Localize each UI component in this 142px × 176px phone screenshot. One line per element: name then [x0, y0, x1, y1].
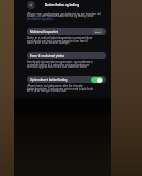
staticText: batterilevetiden. Funksjonen venter med …: [27, 87, 94, 91]
staticText: systemer bidrar til å motvirke ytelsespå…: [27, 63, 90, 67]
button[interactable]: Maksimal kapasitet: [27, 28, 106, 35]
button[interactable]: Om batteri og ytelse...: [27, 17, 55, 21]
staticText: iPhone lærer av ladevanene dine for å be…: [27, 84, 83, 88]
staticText: med da det var nytt. Lavere kapasitet ka…: [27, 39, 88, 43]
staticText: Batterihelsa og lading: [45, 3, 80, 7]
staticText: Maksimal kapasitet: [30, 30, 58, 34]
button[interactable]: Back: [27, 1, 35, 9]
button[interactable]: 88 %: [93, 29, 103, 34]
staticText: Dette er et mål på batterikapasiteten sa…: [27, 36, 93, 40]
staticText: som kan oppstå etter hvert som batteriet…: [27, 65, 88, 69]
staticText: færre timer bruk mellom ladinger.: [27, 41, 70, 45]
button[interactable]: Evne til maksimal ytelse: [27, 52, 106, 59]
staticText: Evne til maksimal ytelse: [30, 54, 65, 58]
staticText: iPhone viser opplysninger om batteriet o…: [27, 12, 102, 16]
staticText: 88 %: [95, 30, 101, 33]
button[interactable]: Optimalisert batterilading: [91, 77, 103, 83]
staticText: Optimalisert batterilading: [30, 78, 68, 82]
button[interactable]: Optimalisert batterilading: [27, 76, 106, 83]
staticText: Innebygde dynamiske programvare- og mask…: [27, 60, 94, 64]
staticText: brukes. Les om hvordan batterihelse og l…: [27, 14, 94, 18]
staticText: 80 % til du trenger å bruke den.: [27, 89, 67, 93]
